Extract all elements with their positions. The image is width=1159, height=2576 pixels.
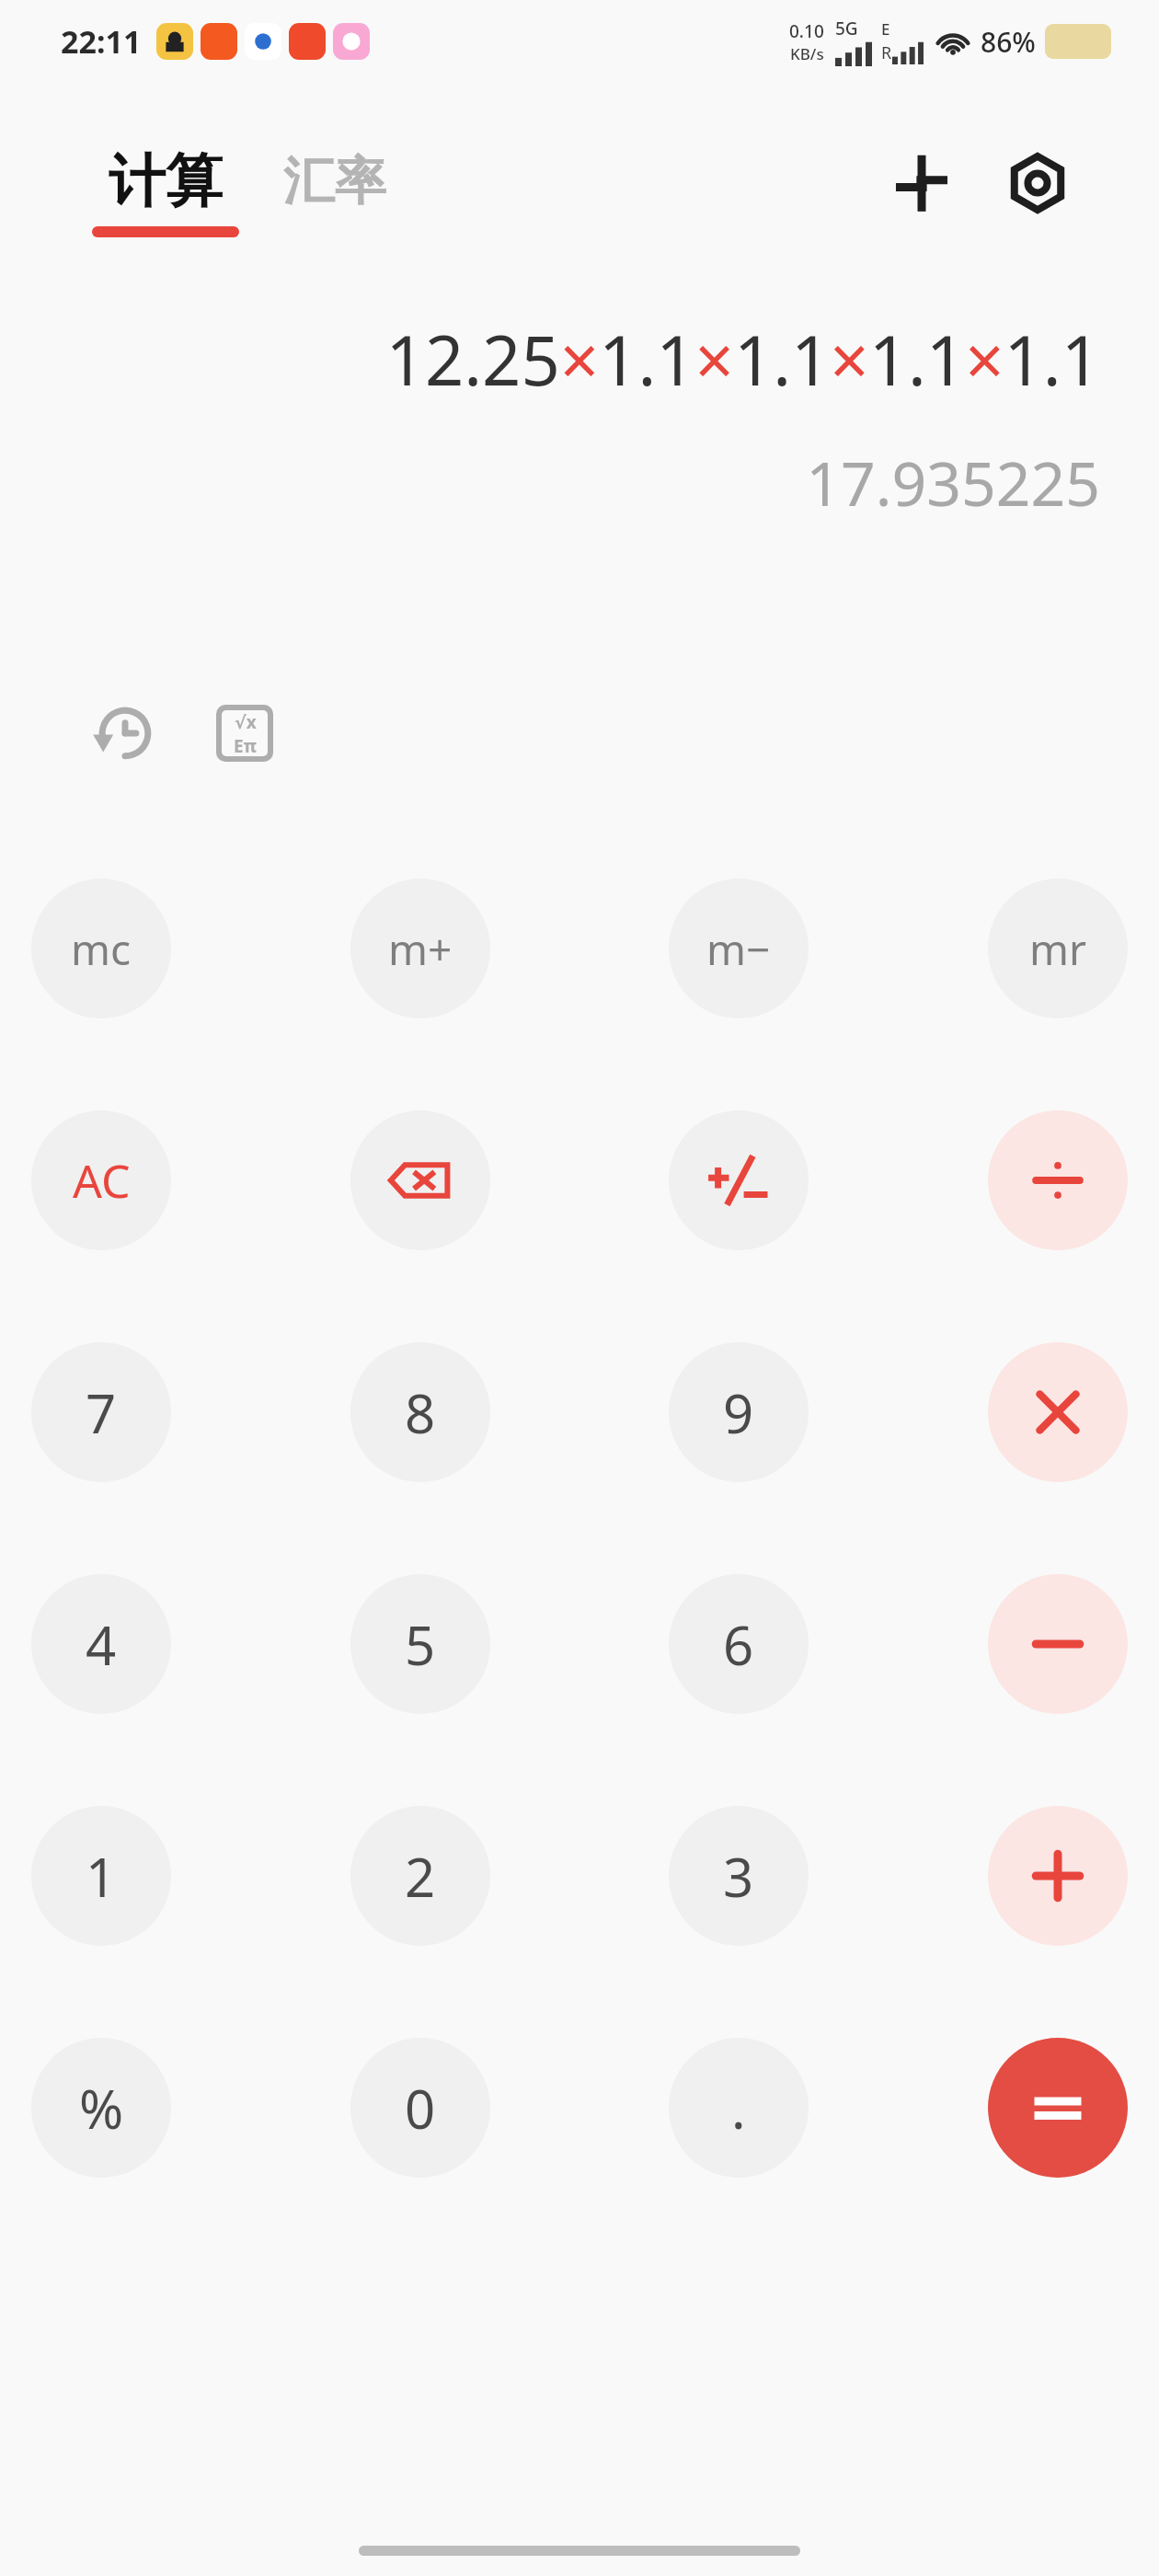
button[interactable]: 2 (350, 1806, 490, 1946)
staticText: 7 (86, 1376, 117, 1449)
staticText: m+ (388, 920, 453, 978)
staticText: 86% (981, 23, 1036, 61)
button[interactable]: . (669, 2038, 809, 2178)
staticText: 9 (723, 1376, 754, 1449)
staticText: 0.10 (789, 19, 824, 43)
staticText: 6 (723, 1608, 754, 1681)
staticText: . (731, 2072, 746, 2145)
staticText: 22:11 (61, 20, 142, 63)
button[interactable]: mr (988, 879, 1128, 1018)
button[interactable]: 7 (31, 1342, 171, 1482)
button[interactable]: 5 (350, 1574, 490, 1714)
staticText: 12.25×1.1×1.1×1.1×1.1 (0, 313, 1100, 406)
staticText: R (881, 41, 892, 64)
staticText: 8 (405, 1376, 436, 1449)
button[interactable]: 4 (31, 1574, 171, 1714)
staticText: 4 (86, 1608, 117, 1681)
button[interactable]: 3 (669, 1806, 809, 1946)
button[interactable]: 汇率 (283, 149, 386, 235)
staticText: 17.935225 (0, 441, 1100, 523)
button[interactable]: Scientific mode (201, 689, 289, 777)
button[interactable]: 计算 (92, 145, 239, 237)
button[interactable]: 1 (31, 1806, 171, 1946)
staticText: % (79, 2072, 124, 2145)
staticText: 0 (405, 2072, 436, 2145)
button[interactable]: Settings (995, 141, 1080, 225)
staticText: 5G (835, 17, 858, 40)
staticText: mr (1029, 920, 1087, 978)
button[interactable]: Backspace (350, 1110, 490, 1250)
button[interactable]: Multiply (988, 1342, 1128, 1482)
staticText: 计算 (109, 145, 223, 217)
button[interactable]: Equals (988, 2038, 1128, 2178)
button[interactable]: AC (31, 1110, 171, 1250)
staticText: 汇率 (283, 149, 386, 214)
staticText: 5 (405, 1608, 436, 1681)
button[interactable]: Plus minus (669, 1110, 809, 1250)
staticText: AC (73, 1149, 131, 1212)
button[interactable]: m− (669, 879, 809, 1018)
button[interactable]: 8 (350, 1342, 490, 1482)
staticText: Eπ (234, 734, 257, 756)
staticText: 3 (723, 1840, 754, 1913)
button[interactable]: 0 (350, 2038, 490, 2178)
button[interactable]: % (31, 2038, 171, 2178)
button[interactable]: Divide (988, 1110, 1128, 1250)
staticText: KB/s (790, 43, 824, 64)
button[interactable]: Minus (988, 1574, 1128, 1714)
button[interactable]: History (81, 689, 169, 777)
button[interactable]: 9 (669, 1342, 809, 1482)
button[interactable]: Plus (988, 1806, 1128, 1946)
button[interactable]: 6 (669, 1574, 809, 1714)
button[interactable]: mc (31, 879, 171, 1018)
staticText: 1 (86, 1840, 117, 1913)
staticText: mc (71, 920, 132, 978)
staticText: √x (235, 710, 257, 734)
button[interactable]: Collapse (879, 141, 964, 225)
staticText: m− (706, 920, 771, 978)
staticText: E (881, 18, 890, 40)
button[interactable]: m+ (350, 879, 490, 1018)
staticText: 2 (405, 1840, 436, 1913)
